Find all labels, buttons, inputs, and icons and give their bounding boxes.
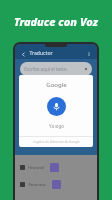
staticText: Google bbox=[46, 81, 67, 89]
button[interactable]: Inglés bbox=[62, 82, 90, 90]
staticText: Traductor bbox=[29, 50, 53, 57]
staticText: Ya sigo bbox=[49, 123, 64, 129]
button[interactable]: More options bbox=[85, 50, 93, 58]
button[interactable]: Español bbox=[20, 80, 52, 92]
staticText: Favoritos bbox=[28, 182, 46, 187]
staticText: Traduce con Voz bbox=[14, 14, 98, 29]
staticText: Escribe aqui el texto bbox=[24, 66, 67, 72]
button[interactable]: Back bbox=[19, 50, 27, 58]
button[interactable]: Favoritos bbox=[15, 178, 97, 190]
button[interactable]: Escribe aqui el texto bbox=[20, 62, 92, 76]
button[interactable]: Swap languages bbox=[52, 82, 60, 90]
staticText: Legales de Asistente de Google bbox=[33, 140, 80, 144]
staticText: Historial bbox=[28, 165, 44, 170]
button[interactable]: Historial bbox=[15, 161, 97, 173]
button[interactable]: Play Favoritos bbox=[52, 180, 61, 189]
button[interactable]: Microphone bbox=[47, 97, 66, 116]
button[interactable]: Play Historial bbox=[50, 163, 59, 172]
